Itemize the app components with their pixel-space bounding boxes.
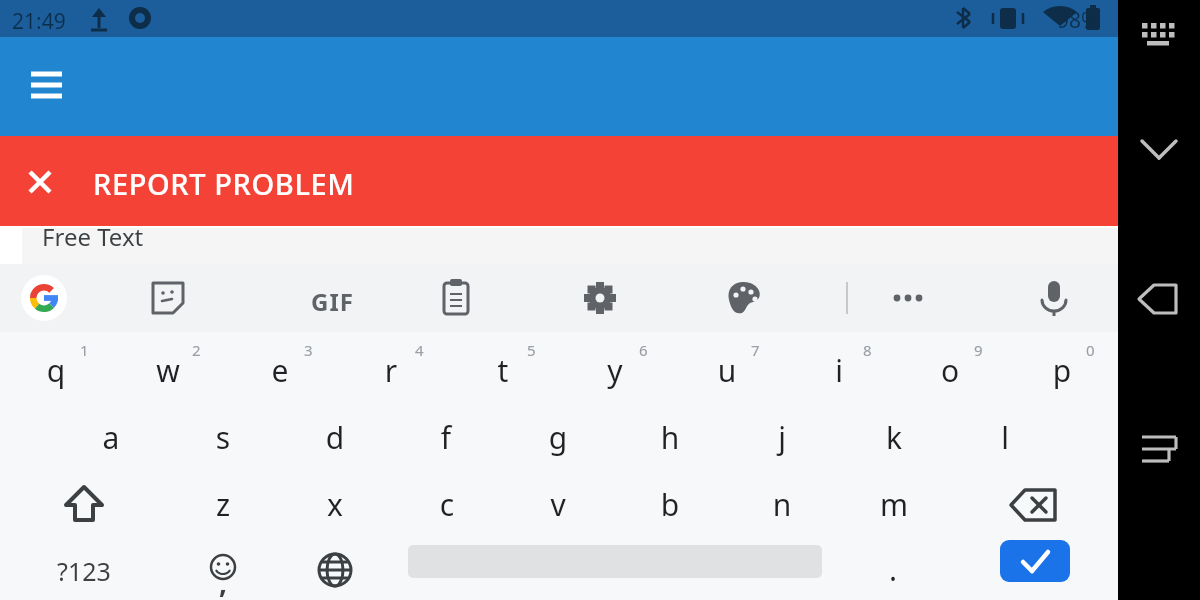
staticText: g	[503, 417, 613, 458]
staticText: REPORT PROBLEM	[93, 164, 355, 203]
button[interactable]: t	[448, 336, 558, 402]
staticText: GIF	[311, 285, 354, 318]
button[interactable]: z	[168, 470, 278, 536]
staticText: i	[784, 350, 894, 391]
staticText: r	[336, 350, 446, 391]
staticText: 9	[974, 340, 983, 360]
button[interactable]: Clipboard	[434, 276, 478, 320]
button[interactable]: w	[113, 336, 223, 402]
staticText: k	[839, 417, 949, 458]
staticText: a	[56, 417, 166, 458]
staticText: Free Text	[42, 220, 144, 253]
button[interactable]: Backspace	[979, 470, 1089, 536]
staticText: f	[391, 417, 501, 458]
button[interactable]: Change language	[280, 537, 390, 600]
staticText: j	[727, 417, 837, 458]
staticText: ?123	[29, 554, 139, 588]
staticText: 3	[304, 340, 313, 360]
button[interactable]: Hide keyboard	[1118, 119, 1200, 179]
staticText: d	[280, 417, 390, 458]
staticText: 7	[751, 340, 760, 360]
button[interactable]: Stickers	[146, 276, 190, 320]
button[interactable]: s	[168, 403, 278, 469]
staticText: t	[448, 350, 558, 391]
button[interactable]: d	[280, 403, 390, 469]
button[interactable]: p	[1007, 336, 1117, 402]
button[interactable]: x	[280, 470, 390, 536]
button[interactable]: Emoji	[168, 537, 278, 600]
button[interactable]: m	[839, 470, 949, 536]
staticText: x	[280, 484, 390, 525]
staticText: ,	[168, 563, 278, 600]
staticText: 2	[192, 340, 201, 360]
button[interactable]: o	[895, 336, 1005, 402]
button[interactable]: Shift	[29, 470, 139, 536]
button[interactable]: Open navigation menu	[16, 61, 78, 113]
staticText: b	[615, 484, 725, 525]
staticText: p	[1007, 350, 1117, 391]
button[interactable]: k	[839, 403, 949, 469]
button[interactable]: l	[950, 403, 1060, 469]
staticText: u	[672, 350, 782, 391]
button[interactable]: Recent apps	[1118, 419, 1200, 479]
staticText: c	[392, 484, 502, 525]
staticText: l	[950, 417, 1060, 458]
staticText: 1	[80, 340, 89, 360]
button[interactable]: j	[727, 403, 837, 469]
button[interactable]: ?123	[29, 537, 139, 600]
button[interactable]: Enter	[1000, 540, 1070, 582]
button[interactable]: c	[392, 470, 502, 536]
staticText: h	[615, 417, 725, 458]
staticText: s	[168, 417, 278, 458]
staticText: m	[839, 484, 949, 525]
button[interactable]: Close	[13, 155, 67, 209]
button[interactable]: GIF	[288, 276, 332, 320]
staticText: w	[113, 350, 223, 391]
staticText: 0	[1086, 340, 1095, 360]
staticText: 4	[415, 340, 424, 360]
staticText: e	[225, 350, 335, 391]
button[interactable]: y	[560, 336, 670, 402]
button[interactable]: h	[615, 403, 725, 469]
button[interactable]: .	[838, 537, 948, 600]
button[interactable]: n	[727, 470, 837, 536]
button[interactable]: Settings	[578, 276, 622, 320]
staticText: n	[727, 484, 837, 525]
button[interactable]: a	[56, 403, 166, 469]
staticText: 6	[639, 340, 648, 360]
staticText: v	[503, 484, 613, 525]
staticText: y	[560, 350, 670, 391]
button[interactable]: More options	[886, 276, 930, 320]
button[interactable]: g	[503, 403, 613, 469]
staticText: q	[1, 350, 111, 391]
button[interactable]: e	[225, 336, 335, 402]
button[interactable]: r	[336, 336, 446, 402]
button[interactable]: q	[1, 336, 111, 402]
staticText: 5	[527, 340, 536, 360]
button[interactable]: Back	[1118, 269, 1200, 329]
button[interactable]: Voice input	[1032, 276, 1076, 320]
staticText: 98%	[1057, 6, 1099, 35]
button[interactable]: u	[672, 336, 782, 402]
button[interactable]: Themes	[722, 276, 766, 320]
button[interactable]: v	[503, 470, 613, 536]
button[interactable]: Google search	[21, 275, 67, 321]
button[interactable]: i	[784, 336, 894, 402]
staticText: 21:49	[12, 7, 66, 36]
staticText: .	[838, 549, 948, 590]
button[interactable]: b	[615, 470, 725, 536]
button[interactable]: Show keyboard	[1118, 2, 1200, 62]
button[interactable]: f	[391, 403, 501, 469]
staticText: z	[168, 484, 278, 525]
staticText: o	[895, 350, 1005, 391]
staticText: 8	[863, 340, 872, 360]
